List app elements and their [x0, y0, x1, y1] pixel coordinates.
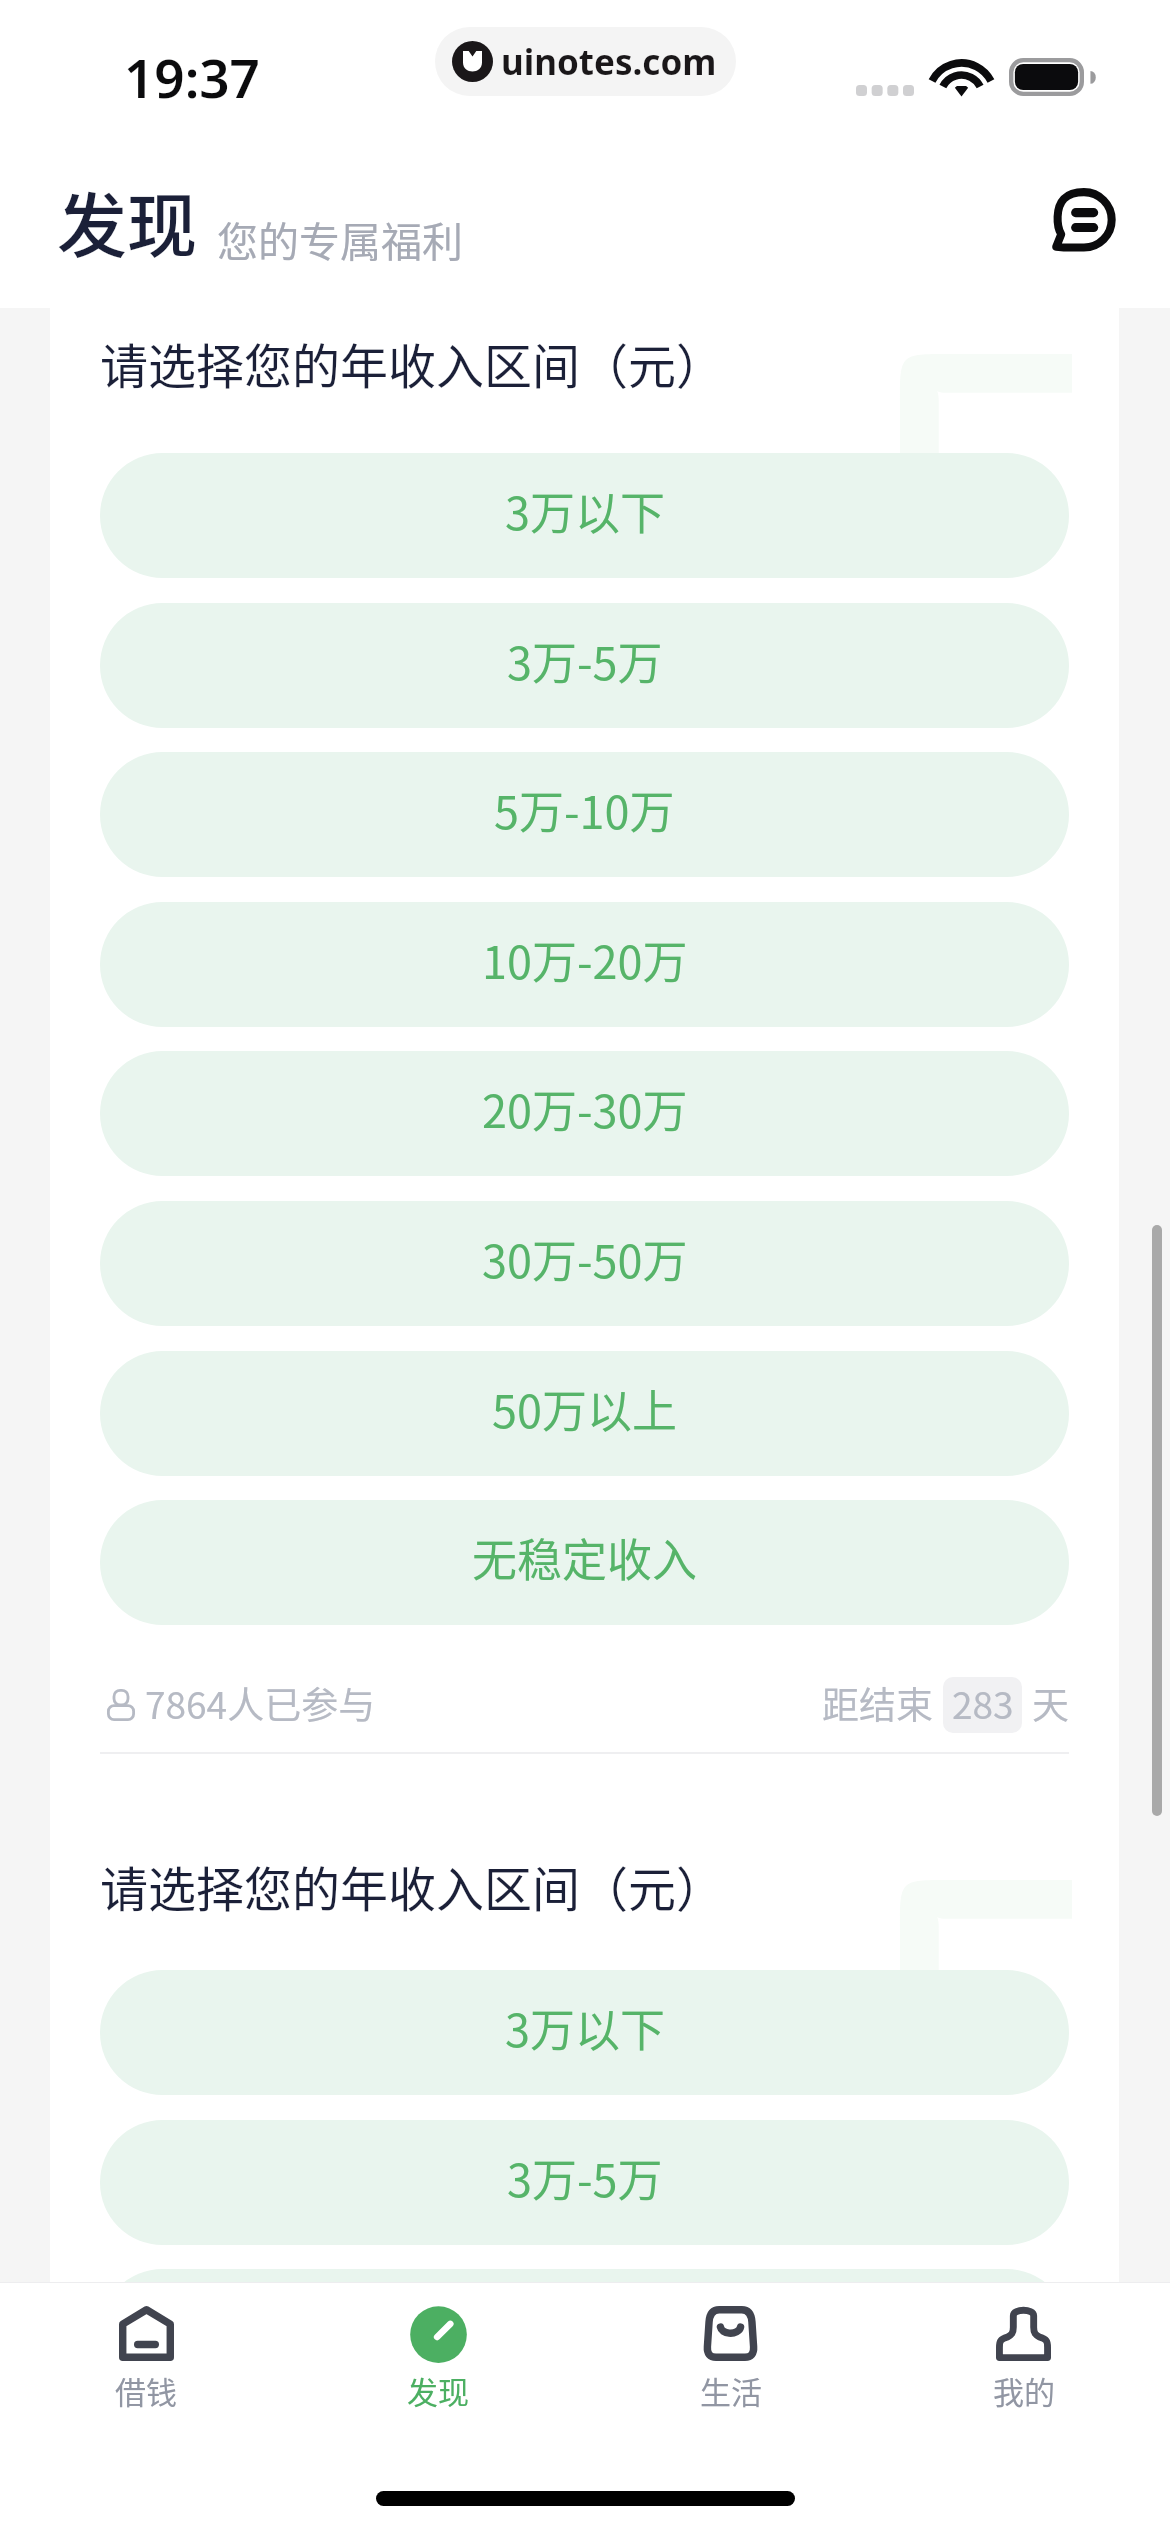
button[interactable]: 5万-10万 — [100, 752, 1069, 877]
staticText: 您的专属福利 — [217, 209, 463, 268]
staticText: 3万-5万 — [507, 628, 663, 693]
button[interactable]: 我的 — [877, 2283, 1170, 2430]
button[interactable]: 无稳定收入 — [100, 1500, 1069, 1625]
staticText: 30万-50万 — [482, 1226, 688, 1291]
button[interactable]: 50万以上 — [100, 1351, 1069, 1476]
button[interactable]: 30万-50万 — [100, 1201, 1069, 1326]
button[interactable]: 借钱 — [0, 2283, 292, 2430]
staticText: 请选择您的年收入区间（元） — [100, 328, 725, 398]
staticText: 3万以下 — [505, 478, 665, 543]
staticText: 3万以下 — [505, 1995, 665, 2060]
staticText: 无稳定收入 — [472, 1525, 698, 1590]
button[interactable]: 生活 — [584, 2283, 877, 2430]
staticText: 20万-30万 — [482, 1076, 688, 1141]
button[interactable]: 20万-30万 — [100, 1051, 1069, 1176]
staticText: 5万-10万 — [494, 777, 675, 842]
staticText: 50万以上 — [492, 1376, 677, 1441]
staticText: 生活 — [700, 2368, 762, 2413]
button[interactable]: 3万以下 — [100, 1970, 1069, 2095]
button[interactable]: 5万-10万 — [100, 2269, 1069, 2394]
staticText: uinotes.com — [501, 38, 717, 86]
staticText: 3万-5万 — [507, 2145, 663, 2210]
staticText: 我的 — [993, 2368, 1055, 2413]
staticText: 7864人已参与 — [145, 1676, 376, 1730]
staticText: 距结束 — [822, 1676, 933, 1730]
staticText: 发现 — [57, 171, 197, 272]
staticText: 天 — [1032, 1676, 1069, 1730]
button[interactable]: 3万-5万 — [100, 2120, 1069, 2245]
button[interactable]: 3万以下 — [100, 453, 1069, 578]
staticText: 请选择您的年收入区间（元） — [100, 1851, 725, 1921]
staticText: 借钱 — [115, 2368, 177, 2413]
staticText: 10万-20万 — [482, 927, 688, 992]
staticText: 19:37 — [124, 41, 260, 113]
staticText: 283 — [952, 1677, 1014, 1730]
staticText: 发现 — [407, 2368, 469, 2413]
button[interactable]: 10万-20万 — [100, 902, 1069, 1027]
button[interactable]: 发现 — [292, 2283, 584, 2430]
button[interactable]: Messages — [1032, 174, 1128, 270]
button[interactable]: 3万-5万 — [100, 603, 1069, 728]
